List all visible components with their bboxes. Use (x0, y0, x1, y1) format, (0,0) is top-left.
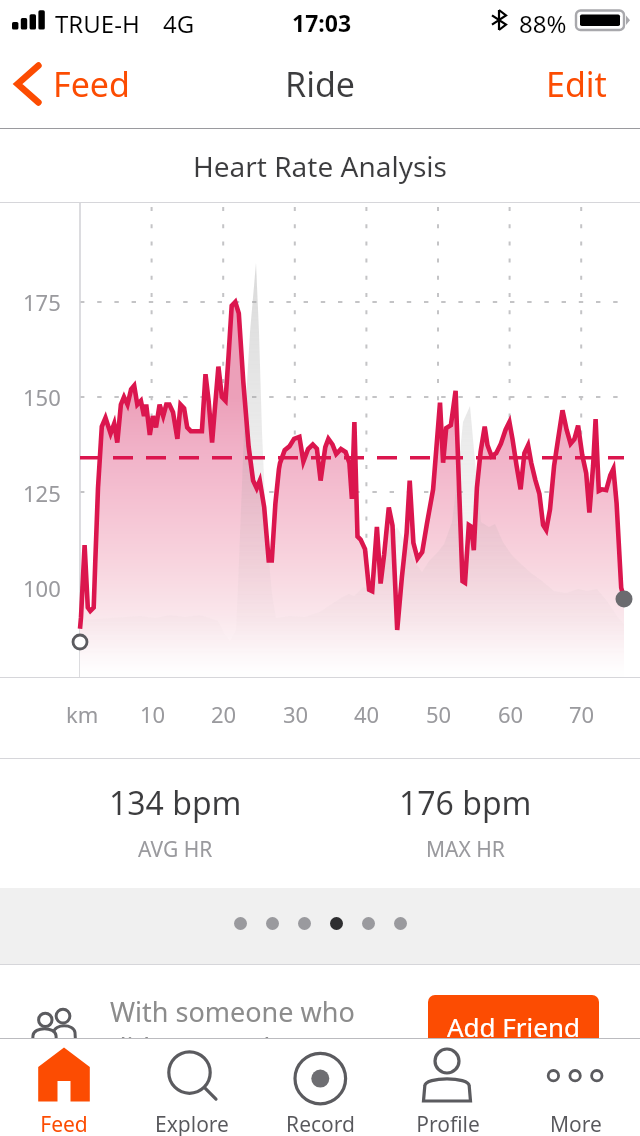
staticText: 150 (23, 382, 61, 412)
staticText: 40 (354, 699, 380, 729)
staticText: Add Friend (447, 1009, 581, 1044)
staticText: Feed (40, 1110, 88, 1136)
staticText: Heart Rate Analysis (193, 147, 447, 185)
button[interactable]: Feed (0, 53, 144, 115)
staticText: 175 (23, 287, 61, 317)
button[interactable]: More (512, 1039, 640, 1136)
staticText: 20 (211, 699, 237, 729)
staticText: 4G (163, 7, 195, 40)
staticText: MAX HR (426, 835, 505, 864)
button[interactable]: Page 2 (266, 917, 279, 930)
button[interactable]: Add Friend (428, 995, 599, 1057)
button[interactable]: Page 4 (330, 917, 343, 930)
button[interactable]: Page 6 (394, 917, 407, 930)
staticText: Feed (53, 61, 130, 107)
staticText: 134 bpm (109, 781, 242, 825)
button[interactable]: Explore (128, 1039, 256, 1136)
staticText: Explore (155, 1110, 229, 1136)
staticText: Edit (546, 61, 607, 107)
staticText: 100 (23, 573, 61, 603)
staticText: 60 (498, 699, 524, 729)
staticText: More (550, 1110, 602, 1136)
button[interactable]: Page 5 (362, 917, 375, 930)
button[interactable]: Profile (384, 1039, 512, 1136)
staticText: 17:03 (292, 7, 352, 38)
button[interactable]: Edit (528, 51, 640, 117)
staticText: 30 (283, 699, 309, 729)
button[interactable]: Page 3 (298, 917, 311, 930)
staticText: TRUE-H (55, 7, 140, 40)
staticText: 88% (519, 7, 567, 40)
staticText: With someone who didn’t record? (110, 993, 378, 1066)
button[interactable]: Record (256, 1039, 384, 1136)
staticText: 10 (140, 699, 166, 729)
button[interactable]: Feed (0, 1039, 128, 1136)
staticText: 50 (426, 699, 452, 729)
staticText: Record (286, 1110, 355, 1136)
button[interactable]: Page 1 (234, 917, 247, 930)
staticText: AVG HR (138, 835, 213, 864)
staticText: 70 (569, 699, 595, 729)
staticText: 176 bpm (399, 781, 532, 825)
staticText: 125 (23, 478, 61, 508)
staticText: Profile (416, 1110, 480, 1136)
staticText: Ride (285, 61, 356, 107)
staticText: km (66, 699, 99, 729)
